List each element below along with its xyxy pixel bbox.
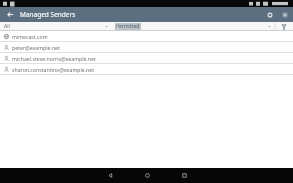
button[interactable]: michael.steve.norris@example.net bbox=[0, 53, 293, 63]
button[interactable]: Back bbox=[99, 168, 121, 183]
button[interactable]: mimecast.com bbox=[0, 31, 293, 41]
button[interactable]: Add sender bbox=[263, 7, 277, 22]
button[interactable]: sharon.constantino@example.net bbox=[0, 64, 293, 74]
button[interactable]: Home bbox=[136, 168, 158, 183]
staticText: michael.steve.norris@example.net bbox=[12, 55, 96, 62]
button[interactable]: Back bbox=[0, 7, 20, 22]
staticText: sharon.constantino@example.net bbox=[12, 66, 95, 73]
staticText: mimecast.com bbox=[12, 33, 48, 40]
staticText: Permitted bbox=[116, 23, 140, 30]
staticText: Managed Senders bbox=[20, 10, 76, 19]
staticText: All bbox=[4, 23, 10, 30]
button[interactable]: Recent apps bbox=[173, 168, 195, 183]
button[interactable]: peter@example.net bbox=[0, 42, 293, 52]
button[interactable]: All bbox=[0, 22, 112, 31]
button[interactable]: Permitted bbox=[112, 22, 275, 31]
button[interactable]: More options bbox=[277, 7, 293, 22]
staticText: peter@example.net bbox=[12, 44, 60, 51]
button[interactable]: Filter bbox=[275, 22, 293, 31]
